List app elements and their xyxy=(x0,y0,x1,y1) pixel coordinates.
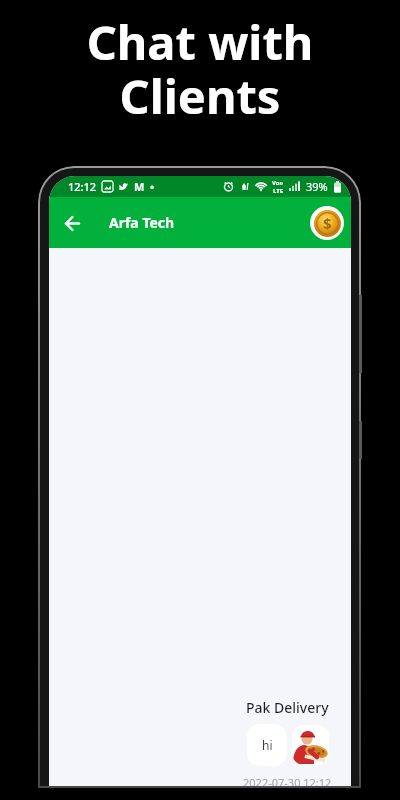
staticText: • xyxy=(150,179,155,194)
staticText: 12:12 xyxy=(68,179,97,194)
button[interactable]: $ xyxy=(310,206,344,240)
staticText: Chat with Clients xyxy=(0,10,400,128)
staticText: hi xyxy=(262,737,273,753)
staticText: Arfa Tech xyxy=(109,213,175,232)
staticText: M xyxy=(134,179,145,194)
staticText: LTE xyxy=(273,187,284,195)
staticText: $ xyxy=(323,213,332,233)
button[interactable]: hi xyxy=(247,724,287,766)
staticText: 39% xyxy=(306,179,328,194)
staticText: 2022-07-30 12:12 xyxy=(243,775,332,788)
staticText: Pak Delivery xyxy=(246,698,329,717)
staticText: Vo» xyxy=(272,179,284,187)
button[interactable] xyxy=(59,210,85,236)
